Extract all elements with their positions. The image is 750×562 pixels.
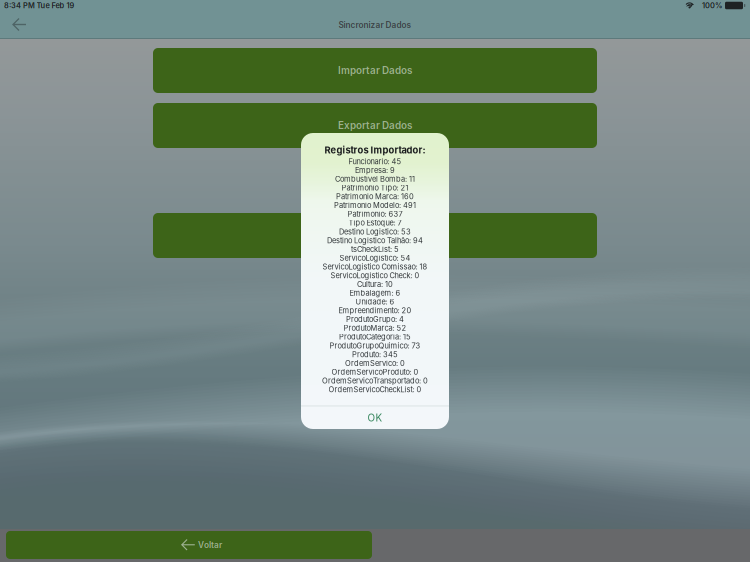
staticText: ProdutoGrupo: 4 xyxy=(346,315,404,324)
staticText: Funcionario: 45 xyxy=(348,157,401,166)
staticText: OrdemServico: 0 xyxy=(345,359,405,368)
staticText: OrdemServicoTransportado: 0 xyxy=(322,376,428,385)
staticText: Empresa: 9 xyxy=(355,166,395,175)
staticText: Patrimonio Modelo: 491 xyxy=(334,201,416,210)
staticText: OK xyxy=(367,412,382,424)
staticText: Tue Feb 19 xyxy=(36,1,74,10)
staticText: ServicoLogistico Comissao: 18 xyxy=(322,262,427,271)
staticText: ServicoLogistico: 54 xyxy=(339,253,410,262)
staticText: Voltar xyxy=(198,540,222,550)
staticText: Registros Importador: xyxy=(324,144,425,156)
staticText: Patrimonio: 637 xyxy=(347,210,402,219)
staticText: Patrimonio Marca: 160 xyxy=(336,192,414,201)
staticText: Importar Dados xyxy=(338,64,412,76)
staticText: 100% xyxy=(702,1,722,10)
staticText: Sincronizar Dados xyxy=(338,20,411,30)
staticText: ProdutoMarca: 52 xyxy=(343,324,406,333)
staticText: ProdutoCategoria: 15 xyxy=(339,332,411,341)
staticText: tsCheckList: 5 xyxy=(351,245,399,254)
button[interactable]: OK xyxy=(301,406,449,429)
button[interactable]: Exportar Dados xyxy=(153,103,597,148)
staticText: Combustivel Bomba: 11 xyxy=(335,174,415,183)
staticText: Produto: 345 xyxy=(352,350,398,359)
staticText: OrdemServicoCheckList: 0 xyxy=(328,385,421,394)
staticText: Destino Logistico: 53 xyxy=(339,227,411,236)
staticText: Cultura: 10 xyxy=(357,280,393,289)
staticText: Destino Logistico Talhão: 94 xyxy=(327,236,423,245)
staticText: Tipo Estoque: 7 xyxy=(348,218,401,227)
staticText: 8:34 PM xyxy=(4,1,35,10)
button[interactable] xyxy=(153,213,597,258)
button[interactable]: Voltar xyxy=(6,531,372,559)
staticText: Exportar Dados xyxy=(338,119,412,131)
button[interactable]: Importar Dados xyxy=(153,48,597,93)
staticText: ProdutoGrupoQuimico: 73 xyxy=(329,341,420,350)
staticText: Patrimonio Tipo: 21 xyxy=(341,183,408,192)
staticText: Embalagem: 6 xyxy=(349,288,400,297)
button[interactable]: Back xyxy=(4,12,35,36)
staticText: Unidade: 6 xyxy=(355,297,394,306)
staticText: OrdemServicoProduto: 0 xyxy=(331,367,418,376)
staticText: ServicoLogistico Check: 0 xyxy=(330,271,419,280)
staticText: Empreendimento: 20 xyxy=(338,306,411,315)
